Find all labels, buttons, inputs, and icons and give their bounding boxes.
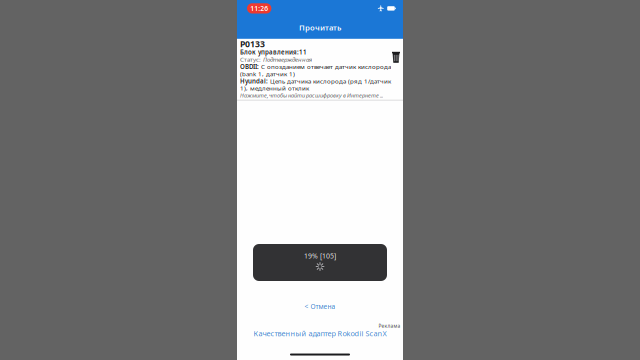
staticText: Прочитать [299, 22, 341, 33]
staticText: 1), медленный отклик [240, 84, 309, 92]
staticText: 11:26 [250, 4, 268, 13]
staticText: P0133 [240, 38, 265, 50]
staticText: < Отмена [304, 302, 335, 311]
button[interactable]: Delete code [387, 39, 403, 68]
staticText: OBDII: С опозданием отвечает датчик кисл… [240, 62, 391, 71]
staticText: (bank 1, датчик 1) [240, 70, 295, 78]
staticText: 19% [105] [304, 251, 336, 260]
staticText: Реклама [378, 323, 400, 329]
staticText: Нажмите, чтобы найти расшифровку в Интер… [240, 92, 383, 99]
button[interactable]: < Отмена [290, 300, 350, 313]
staticText: Hyundai: Цепь датчика кислорода (ряд 1/д… [240, 77, 391, 85]
staticText: Качественный адаптер Rokodil ScanX [253, 328, 386, 338]
button[interactable]: Качественный адаптер Rokodil ScanX [245, 329, 395, 338]
staticText: Блок управления:11 [240, 48, 307, 56]
staticText: Статус: Подтвержденная [240, 55, 312, 63]
